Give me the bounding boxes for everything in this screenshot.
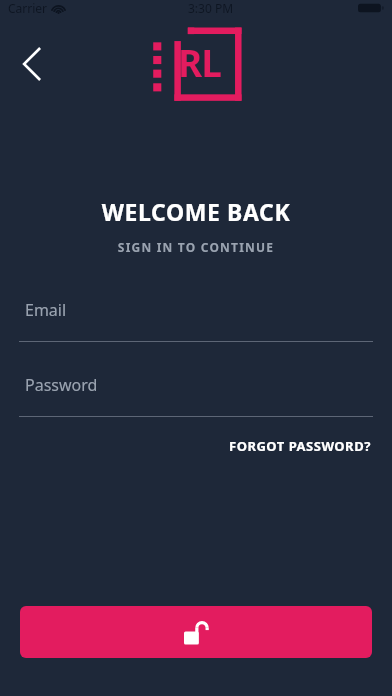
staticText: Password bbox=[25, 374, 98, 396]
staticText: Carrier bbox=[8, 0, 48, 16]
staticText: SIGN IN TO CONTINUE bbox=[0, 239, 392, 255]
button[interactable]: Email bbox=[0, 289, 392, 342]
staticText: WELCOME BACK bbox=[0, 196, 392, 227]
staticText: RL bbox=[178, 37, 221, 85]
button[interactable]: Password bbox=[0, 364, 392, 417]
staticText: Email bbox=[25, 299, 67, 321]
button[interactable]: FORGOT PASSWORD? bbox=[227, 433, 373, 459]
staticText: 3:30 PM bbox=[188, 0, 234, 16]
button[interactable]: Back bbox=[10, 42, 54, 86]
staticText: FORGOT PASSWORD? bbox=[229, 437, 371, 455]
button[interactable]: Sign in bbox=[20, 606, 372, 658]
